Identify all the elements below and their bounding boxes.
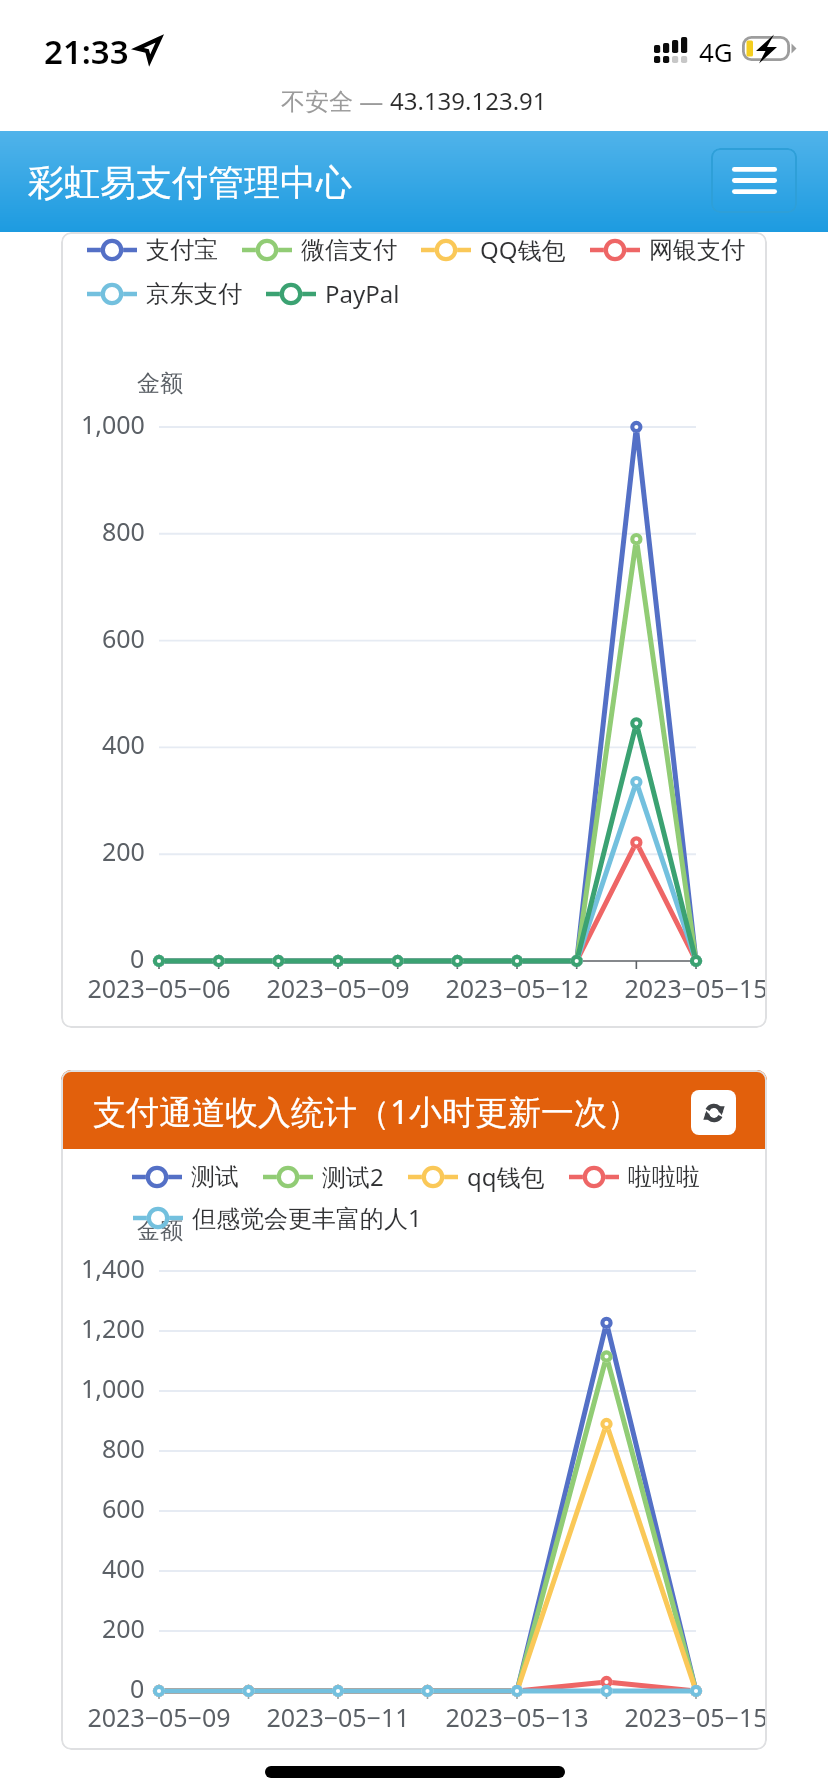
staticText: 2023−05−15 (624, 971, 767, 1005)
staticText: 800 (102, 1431, 145, 1465)
staticText: 不安全 — (281, 84, 390, 117)
staticText: 400 (102, 727, 145, 761)
staticText: 1,000 (81, 407, 145, 441)
staticText: 0 (130, 1671, 145, 1705)
staticText: 2023−05−09 (266, 971, 410, 1005)
staticText: QQ钱包 (480, 233, 566, 266)
staticText: 彩虹易支付管理中心 (28, 160, 352, 205)
staticText: 微信支付 (301, 235, 397, 265)
staticText: 800 (102, 514, 145, 548)
staticText: 1,400 (81, 1251, 145, 1285)
staticText: 2023−05−06 (87, 971, 231, 1005)
staticText: 600 (102, 1491, 145, 1525)
staticText: 京东支付 (146, 279, 242, 309)
staticText: qq钱包 (467, 1160, 545, 1193)
staticText: 2023−05−12 (445, 971, 589, 1005)
button[interactable]: Refresh (691, 1090, 736, 1135)
staticText: 啦啦啦 (628, 1162, 700, 1192)
staticText: 2023−05−11 (266, 1700, 410, 1734)
staticText: 200 (102, 834, 145, 868)
staticText: 支付宝 (146, 235, 218, 265)
staticText: 2023−05−09 (87, 1700, 231, 1734)
staticText: 21:33 (44, 29, 129, 74)
staticText: 600 (102, 621, 145, 655)
staticText: 1,200 (81, 1311, 145, 1345)
staticText: 测试 (191, 1162, 239, 1192)
staticText: 但感觉会更丰富的人1 (192, 1201, 422, 1234)
staticText: 4G (699, 34, 733, 69)
staticText: PayPal (325, 277, 400, 310)
staticText: 200 (102, 1611, 145, 1645)
staticText: 1,000 (81, 1371, 145, 1405)
staticText: 43.139.123.91 (390, 84, 547, 117)
staticText: 2023−05−15 (624, 1700, 767, 1734)
staticText: 测试2 (322, 1160, 384, 1193)
staticText: 400 (102, 1551, 145, 1585)
staticText: 网银支付 (649, 235, 745, 265)
staticText: 支付通道收入统计（1小时更新一次） (93, 1089, 640, 1134)
staticText: 2023−05−13 (445, 1700, 589, 1734)
button[interactable]: Menu (711, 148, 797, 213)
staticText: 金额 (137, 369, 183, 398)
staticText: 金额 (137, 1216, 183, 1245)
staticText: 0 (130, 941, 145, 975)
